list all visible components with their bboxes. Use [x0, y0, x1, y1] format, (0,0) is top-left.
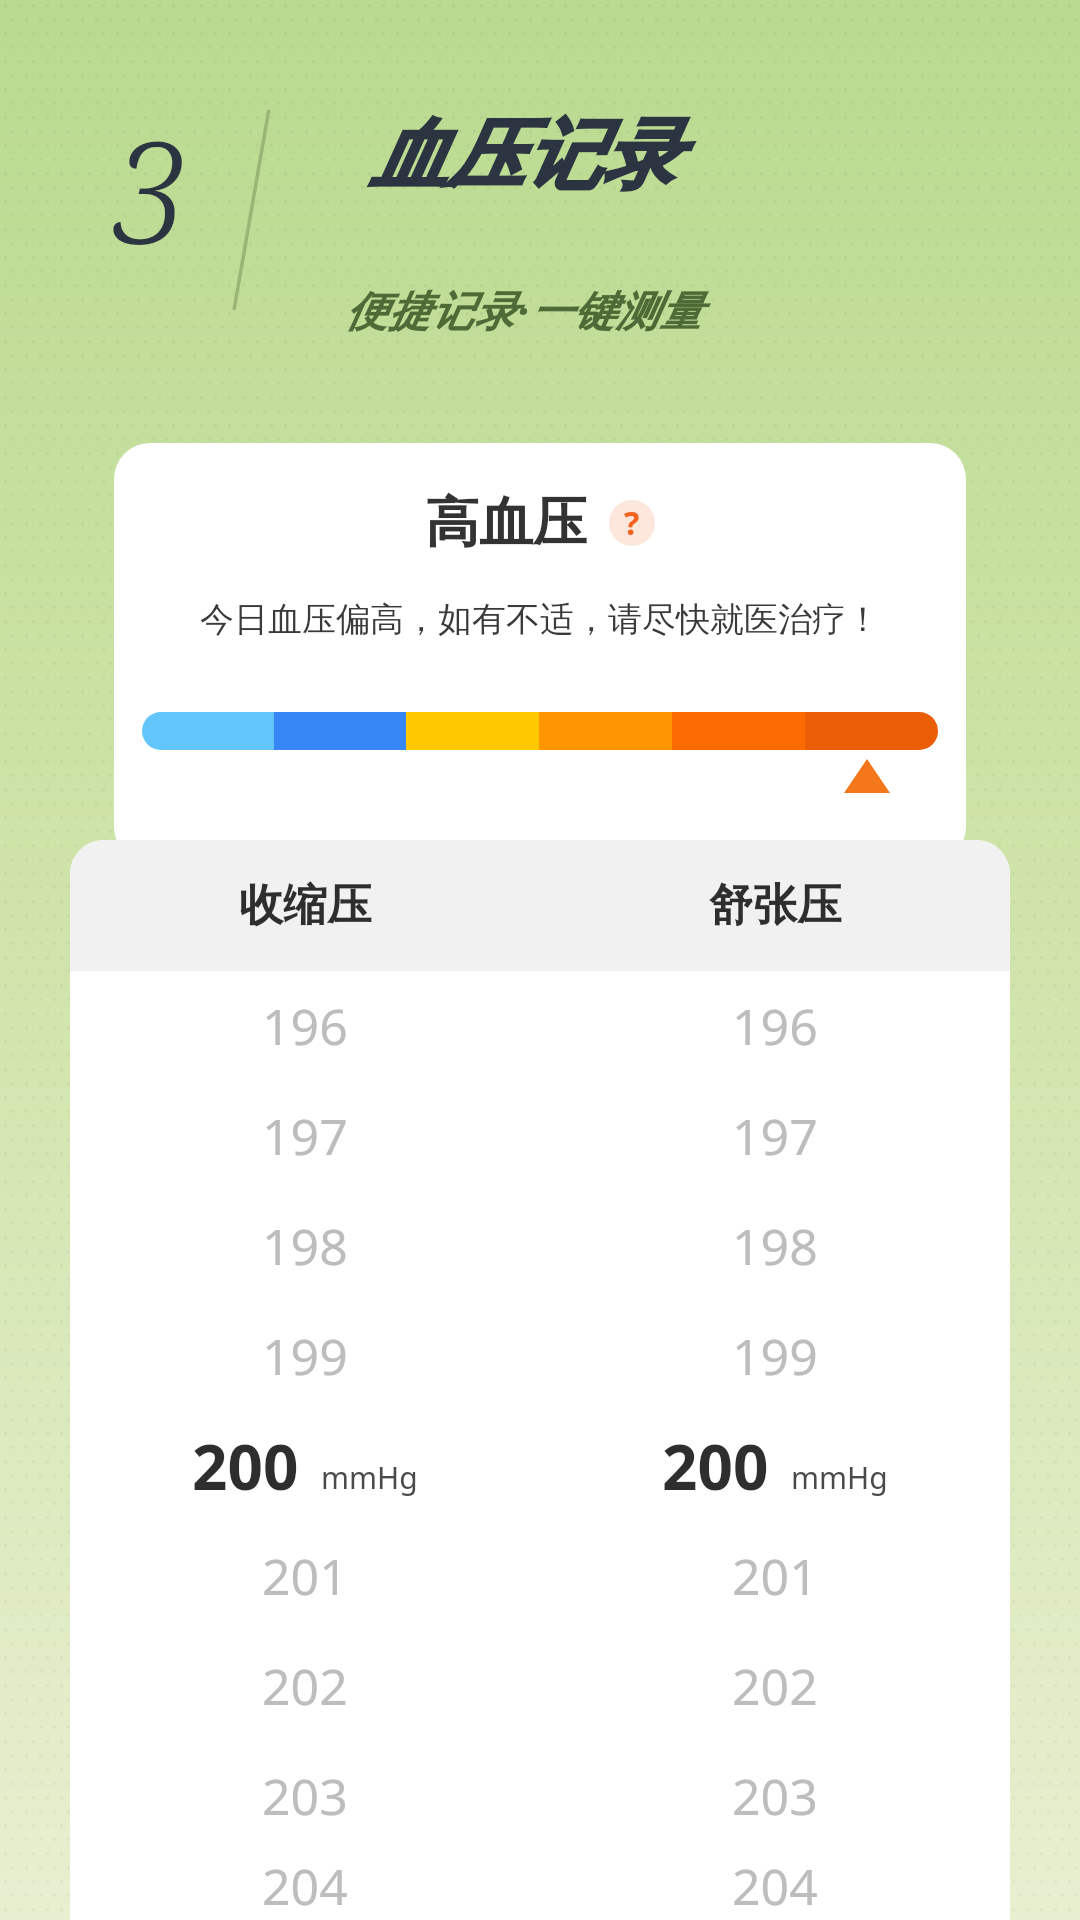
staticText: 197: [732, 1102, 818, 1170]
button[interactable]: 201: [70, 1521, 540, 1631]
staticText: 舒张压: [709, 878, 841, 933]
button[interactable]: 200: [70, 1411, 540, 1521]
staticText: 今日血压偏高，如有不适，请尽快就医治疗！: [200, 598, 880, 641]
button[interactable]: 203: [70, 1741, 540, 1851]
button[interactable]: 202: [70, 1631, 540, 1741]
staticText: 203: [732, 1762, 818, 1830]
button[interactable]: 说明: [609, 500, 655, 546]
staticText: 204: [262, 1852, 348, 1920]
button[interactable]: 202: [540, 1631, 1010, 1741]
button[interactable]: 198: [70, 1191, 540, 1301]
staticText: 198: [262, 1212, 348, 1280]
staticText: 204: [732, 1852, 818, 1920]
staticText: 197: [262, 1102, 348, 1170]
button[interactable]: 204: [70, 1851, 540, 1920]
button[interactable]: 201: [540, 1521, 1010, 1631]
button[interactable]: 舒张压: [540, 840, 1010, 971]
staticText: mmHg: [791, 1457, 888, 1498]
button[interactable]: 收缩压: [70, 840, 540, 971]
staticText: 便捷记录·一键测量: [345, 281, 703, 338]
button[interactable]: 200: [540, 1411, 1010, 1521]
staticText: 203: [262, 1762, 348, 1830]
staticText: 202: [732, 1652, 818, 1720]
button[interactable]: 204: [540, 1851, 1010, 1920]
staticText: 200: [662, 1424, 769, 1508]
staticText: 3: [113, 94, 189, 285]
staticText: 血压记录: [370, 108, 678, 204]
staticText: ?: [624, 501, 640, 545]
staticText: 202: [262, 1652, 348, 1720]
button[interactable]: 199: [540, 1301, 1010, 1411]
button[interactable]: 高血压: [114, 443, 966, 863]
staticText: 收缩压: [239, 878, 371, 933]
staticText: 196: [732, 992, 818, 1060]
button[interactable]: 199: [70, 1301, 540, 1411]
staticText: 高血压: [425, 489, 587, 557]
staticText: mmHg: [321, 1457, 418, 1498]
staticText: 199: [732, 1322, 818, 1390]
staticText: 199: [262, 1322, 348, 1390]
staticText: 200: [192, 1424, 299, 1508]
button[interactable]: 197: [70, 1081, 540, 1191]
staticText: 196: [262, 992, 348, 1060]
button[interactable]: 196: [70, 971, 540, 1081]
staticText: 201: [732, 1542, 818, 1610]
button[interactable]: 203: [540, 1741, 1010, 1851]
button[interactable]: 196: [540, 971, 1010, 1081]
staticText: 198: [732, 1212, 818, 1280]
staticText: 201: [262, 1542, 348, 1610]
button[interactable]: 198: [540, 1191, 1010, 1301]
button[interactable]: 197: [540, 1081, 1010, 1191]
